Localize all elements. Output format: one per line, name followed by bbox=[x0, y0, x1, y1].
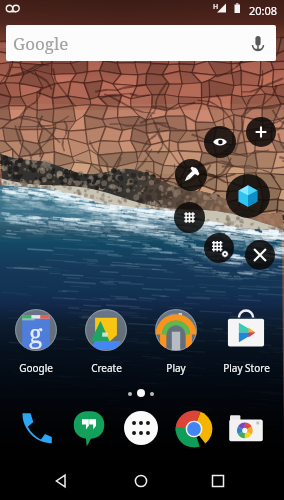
staticText: 20:08 bbox=[249, 3, 278, 18]
staticText: H bbox=[213, 2, 219, 12]
staticText: g bbox=[29, 316, 43, 350]
staticText: Google bbox=[13, 32, 69, 55]
staticText: Google bbox=[19, 361, 53, 375]
button[interactable]: Home bbox=[122, 462, 160, 500]
button[interactable]: Hangouts bbox=[66, 405, 112, 451]
button[interactable]: Google bbox=[6, 25, 276, 61]
button[interactable]: Play bbox=[142, 309, 210, 375]
button[interactable]: Recents bbox=[199, 462, 237, 500]
button[interactable]: Add bbox=[246, 117, 276, 147]
button[interactable]: Preview bbox=[204, 126, 236, 158]
button[interactable]: Voice search bbox=[240, 25, 276, 61]
button[interactable]: Camera bbox=[223, 407, 269, 453]
button[interactable]: Phone bbox=[13, 405, 59, 451]
staticText: Play bbox=[166, 361, 186, 375]
button[interactable]: Grid settings bbox=[204, 233, 234, 263]
button[interactable]: Apps bbox=[118, 405, 164, 451]
button[interactable]: Play Store bbox=[212, 309, 280, 375]
staticText: Create bbox=[91, 361, 122, 375]
button[interactable]: Chrome bbox=[171, 406, 217, 452]
staticText: Play Store bbox=[223, 361, 270, 375]
button[interactable]: Close bbox=[245, 240, 275, 270]
button[interactable]: Create bbox=[72, 309, 140, 375]
button[interactable]: Back bbox=[43, 462, 81, 500]
button[interactable]: Colour picker bbox=[175, 159, 207, 191]
button[interactable]: Gem bbox=[226, 174, 270, 218]
button[interactable]: g bbox=[2, 309, 70, 375]
button[interactable]: Grid bbox=[174, 202, 205, 233]
